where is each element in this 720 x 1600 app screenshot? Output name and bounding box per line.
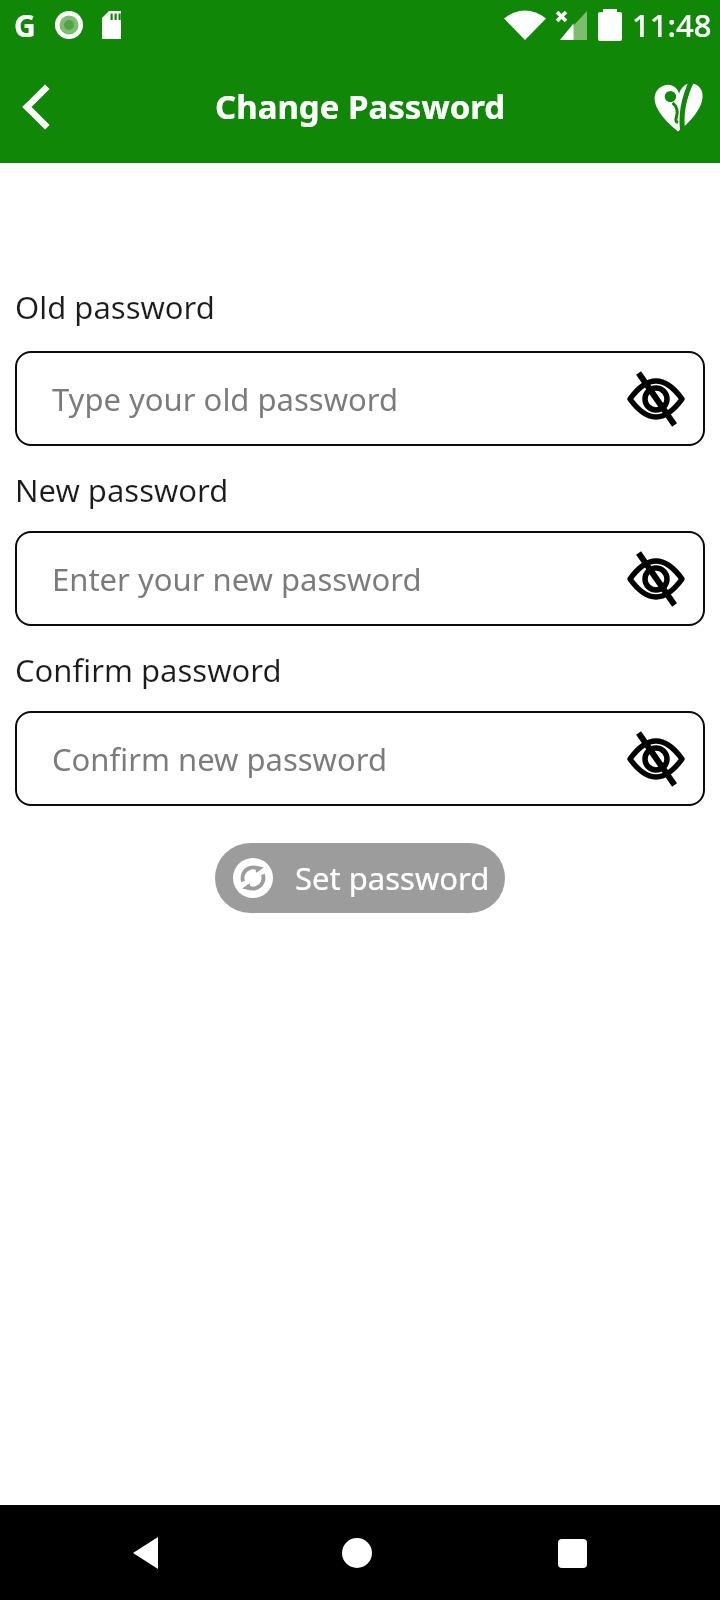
staticText: G xyxy=(14,5,36,46)
staticText: Confirm new password xyxy=(52,738,387,780)
staticText: New password xyxy=(15,469,229,511)
button[interactable] xyxy=(548,1529,596,1577)
staticText: Old password xyxy=(15,286,215,328)
button[interactable]: Set password xyxy=(215,843,505,913)
button[interactable] xyxy=(121,1529,169,1577)
staticText: Type your old password xyxy=(52,378,399,420)
button[interactable]: Enter your new password xyxy=(15,531,705,626)
staticText: Set password xyxy=(295,857,490,899)
staticText: 11:48 xyxy=(632,4,712,46)
button[interactable] xyxy=(333,1529,381,1577)
button[interactable]: Confirm new password xyxy=(15,711,705,806)
button[interactable] xyxy=(12,83,60,131)
staticText: Confirm password xyxy=(15,649,282,691)
button[interactable]: Type your old password xyxy=(15,351,705,446)
staticText: Change Password xyxy=(215,84,506,129)
staticText: Enter your new password xyxy=(52,558,422,600)
